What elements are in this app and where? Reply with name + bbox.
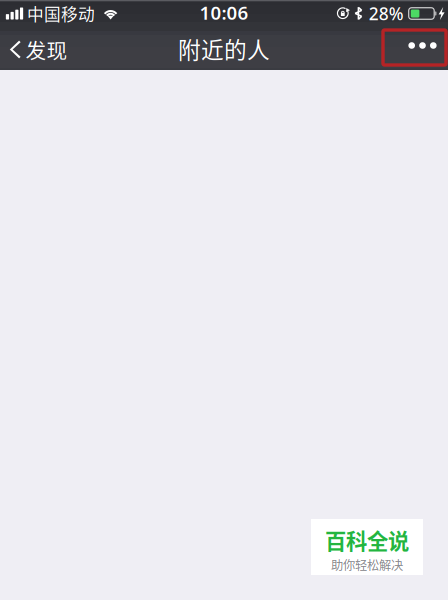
staticText: 10:06 [199, 0, 248, 25]
staticText: 百科全说 [325, 524, 409, 555]
staticText: 发现 [25, 34, 67, 64]
staticText: 28% [369, 2, 404, 25]
button[interactable]: 发现 [0, 31, 77, 70]
staticText: 附近的人 [178, 32, 270, 65]
staticText: 助你轻松解决 [331, 556, 403, 574]
button[interactable]: More [380, 31, 448, 70]
staticText: 中国移动 [27, 1, 95, 25]
